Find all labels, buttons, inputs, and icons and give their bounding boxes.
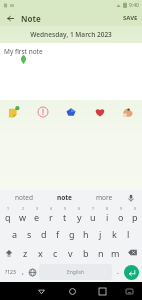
button[interactable]: Voice input: [124, 190, 138, 205]
button[interactable]: 6: [72, 205, 86, 224]
staticText: Wednesday, 1 March 2023: [30, 30, 112, 39]
staticText: 0: [134, 206, 137, 211]
staticText: note: [57, 193, 72, 202]
button[interactable]: g: [65, 224, 79, 243]
staticText: b: [83, 247, 89, 259]
staticText: y: [77, 211, 82, 223]
staticText: 9:40: [129, 2, 139, 9]
button[interactable]: ,: [18, 264, 27, 280]
button[interactable]: Shift: [0, 243, 18, 262]
button[interactable]: z: [18, 243, 33, 262]
staticText: a: [12, 228, 18, 240]
button[interactable]: Change language: [27, 264, 38, 280]
staticText: j: [99, 228, 102, 240]
button[interactable]: j: [93, 224, 107, 243]
staticText: 2: [22, 206, 25, 211]
staticText: 1: [7, 206, 10, 211]
staticText: h: [83, 228, 89, 240]
button[interactable]: 4: [44, 205, 58, 224]
staticText: x: [38, 247, 43, 259]
button[interactable]: 8: [100, 205, 114, 224]
staticText: o: [118, 211, 124, 223]
button[interactable]: d: [37, 224, 51, 243]
staticText: 5: [64, 206, 67, 211]
staticText: c: [53, 247, 58, 259]
staticText: r: [49, 211, 53, 223]
staticText: i: [106, 211, 109, 223]
staticText: d: [41, 228, 47, 240]
staticText: f: [56, 228, 60, 240]
other: Enter: [122, 264, 140, 280]
button[interactable]: Home: [57, 282, 87, 300]
staticText: w: [19, 211, 27, 223]
staticText: t: [63, 211, 67, 223]
staticText: 6: [78, 206, 81, 211]
staticText: z: [23, 247, 28, 259]
button[interactable]: x: [33, 243, 48, 262]
button[interactable]: Back: [4, 12, 16, 24]
button[interactable]: Gem: [63, 104, 79, 120]
staticText: 4: [50, 206, 53, 211]
button[interactable]: Backspace: [123, 243, 142, 262]
staticText: p: [132, 211, 138, 223]
button[interactable]: .: [113, 264, 122, 280]
button[interactable]: c: [48, 243, 63, 262]
staticText: 7: [92, 206, 95, 211]
button[interactable]: l: [121, 224, 135, 243]
button[interactable]: 0: [128, 205, 142, 224]
staticText: My first note: [4, 47, 43, 56]
staticText: q: [5, 211, 11, 223]
staticText: 9: [120, 206, 123, 211]
button[interactable]: 5: [58, 205, 72, 224]
button[interactable]: Hide keyboard: [117, 282, 142, 300]
staticText: Note: [21, 13, 41, 24]
staticText: m: [111, 247, 120, 259]
button[interactable]: English: [39, 264, 112, 280]
button[interactable]: n: [93, 243, 108, 262]
button[interactable]: My first note: [0, 43, 142, 100]
staticText: l: [127, 228, 130, 240]
button[interactable]: 2: [15, 205, 30, 224]
button[interactable]: Heart: [92, 104, 108, 120]
staticText: s: [27, 228, 32, 240]
staticText: e: [34, 211, 40, 223]
button[interactable]: Important: [35, 104, 51, 120]
staticText: English: [67, 269, 85, 276]
button[interactable]: Strong: [120, 104, 136, 120]
button[interactable]: [124, 265, 139, 280]
button[interactable]: b: [78, 243, 93, 262]
staticText: SAVE: [123, 14, 138, 22]
staticText: 8: [106, 206, 109, 211]
staticText: v: [68, 247, 73, 259]
button[interactable]: 7: [86, 205, 100, 224]
button[interactable]: SAVE: [123, 14, 138, 22]
staticText: ,: [22, 267, 24, 277]
staticText: u: [90, 211, 96, 223]
staticText: more: [96, 193, 113, 202]
button[interactable]: m: [108, 243, 123, 262]
staticText: .: [117, 267, 119, 277]
button[interactable]: f: [51, 224, 65, 243]
staticText: n: [98, 247, 104, 259]
staticText: ?123: [5, 269, 16, 276]
staticText: g: [69, 228, 75, 240]
button[interactable]: ?123: [2, 264, 18, 280]
button[interactable]: s: [22, 224, 37, 243]
staticText: M: [10, 3, 14, 8]
button[interactable]: v: [63, 243, 78, 262]
button[interactable]: 9: [114, 205, 128, 224]
button[interactable]: k: [107, 224, 121, 243]
button[interactable]: Recent apps: [87, 282, 117, 300]
button[interactable]: 3: [30, 205, 44, 224]
button[interactable]: more: [84, 190, 124, 205]
button[interactable]: a: [7, 224, 22, 243]
button[interactable]: Back: [26, 282, 57, 300]
staticText: k: [112, 228, 117, 240]
button[interactable]: noted: [4, 190, 44, 205]
button[interactable]: Note: [6, 104, 22, 120]
button[interactable]: h: [79, 224, 93, 243]
staticText: 3: [36, 206, 39, 211]
staticText: noted: [15, 193, 33, 202]
button[interactable]: 1: [0, 205, 15, 224]
button[interactable]: note: [44, 190, 84, 205]
